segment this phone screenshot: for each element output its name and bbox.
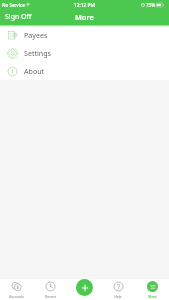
staticText: More [148, 294, 157, 299]
button[interactable]: Add [67, 279, 101, 300]
staticText: Sign Off [5, 12, 32, 22]
staticText: No Service [2, 2, 25, 8]
button[interactable]: Recent [33, 279, 67, 300]
button[interactable]: Payees [0, 26, 169, 44]
staticText: 12:12 PM [74, 2, 95, 9]
staticText: Settings [24, 48, 51, 58]
staticText: About [24, 66, 45, 76]
staticText: Help [114, 294, 122, 299]
button[interactable]: About [0, 62, 169, 80]
staticText: 75% [146, 2, 155, 8]
button[interactable]: Accounts [0, 279, 33, 300]
button[interactable]: Help [101, 279, 135, 300]
staticText: Accounts [9, 294, 24, 299]
staticText: Recent [45, 294, 56, 299]
staticText: Payees [24, 30, 48, 40]
button[interactable]: Sign Off [0, 9, 37, 25]
staticText: More [75, 12, 94, 22]
button[interactable]: More [135, 279, 169, 300]
button[interactable]: Settings [0, 44, 169, 62]
